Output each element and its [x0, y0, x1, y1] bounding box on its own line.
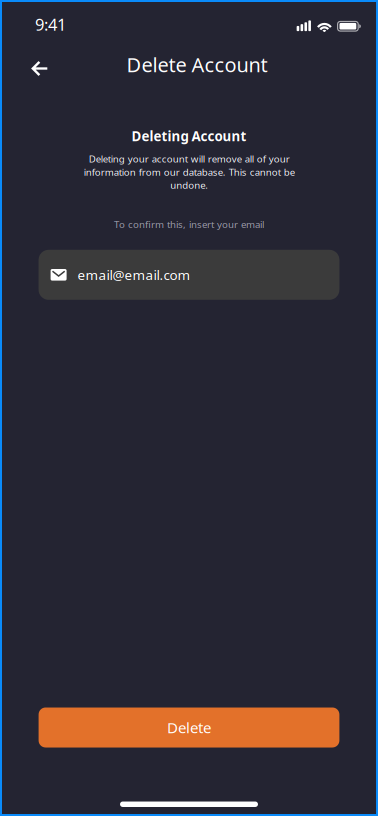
button[interactable]: Delete [39, 707, 339, 747]
staticText: Deleting Account [131, 127, 246, 145]
staticText: email@email.com [78, 266, 191, 284]
staticText: Delete [167, 717, 211, 738]
staticText: To confirm this, insert your email [114, 218, 264, 231]
button[interactable]: Back [21, 51, 59, 85]
staticText: 9:41 [35, 13, 66, 35]
staticText: Delete Account [126, 51, 267, 78]
staticText: Deleting your account will remove all of… [83, 152, 294, 192]
